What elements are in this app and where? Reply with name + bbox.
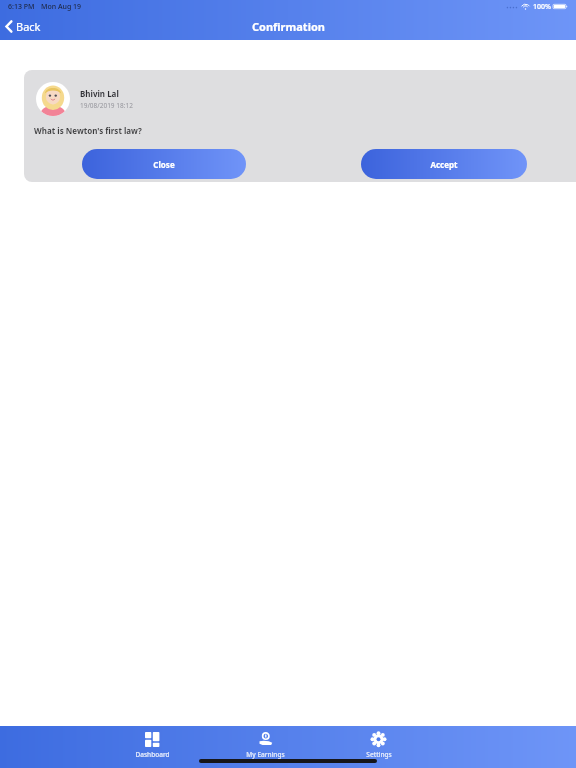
staticText: Accept: [430, 159, 458, 170]
button[interactable]: Settings: [322, 731, 435, 760]
staticText: 100%: [533, 2, 551, 12]
button[interactable]: Dashboard: [96, 731, 209, 760]
staticText: Dashboard: [135, 750, 170, 759]
button[interactable]: My Earnings: [209, 731, 322, 760]
staticText: Settings: [366, 750, 392, 759]
staticText: Back: [16, 19, 41, 34]
staticText: Bhivin Lal: [80, 88, 119, 99]
button[interactable]: Accept: [361, 149, 527, 179]
button[interactable]: Close: [82, 149, 246, 179]
other: My Earnings: [258, 732, 273, 747]
staticText: My Earnings: [246, 750, 285, 759]
staticText: Confirmation: [252, 19, 325, 34]
other: Dashboard: [145, 732, 160, 747]
button[interactable]: Back: [0, 16, 49, 37]
other: Settings: [371, 732, 386, 747]
staticText: 19/08/2019 18:12: [80, 101, 133, 110]
staticText: Close: [153, 159, 175, 170]
staticText: What is Newton's first law?: [34, 125, 142, 136]
staticText: Mon Aug 19: [41, 2, 82, 12]
staticText: 6:13 PM: [8, 2, 35, 12]
